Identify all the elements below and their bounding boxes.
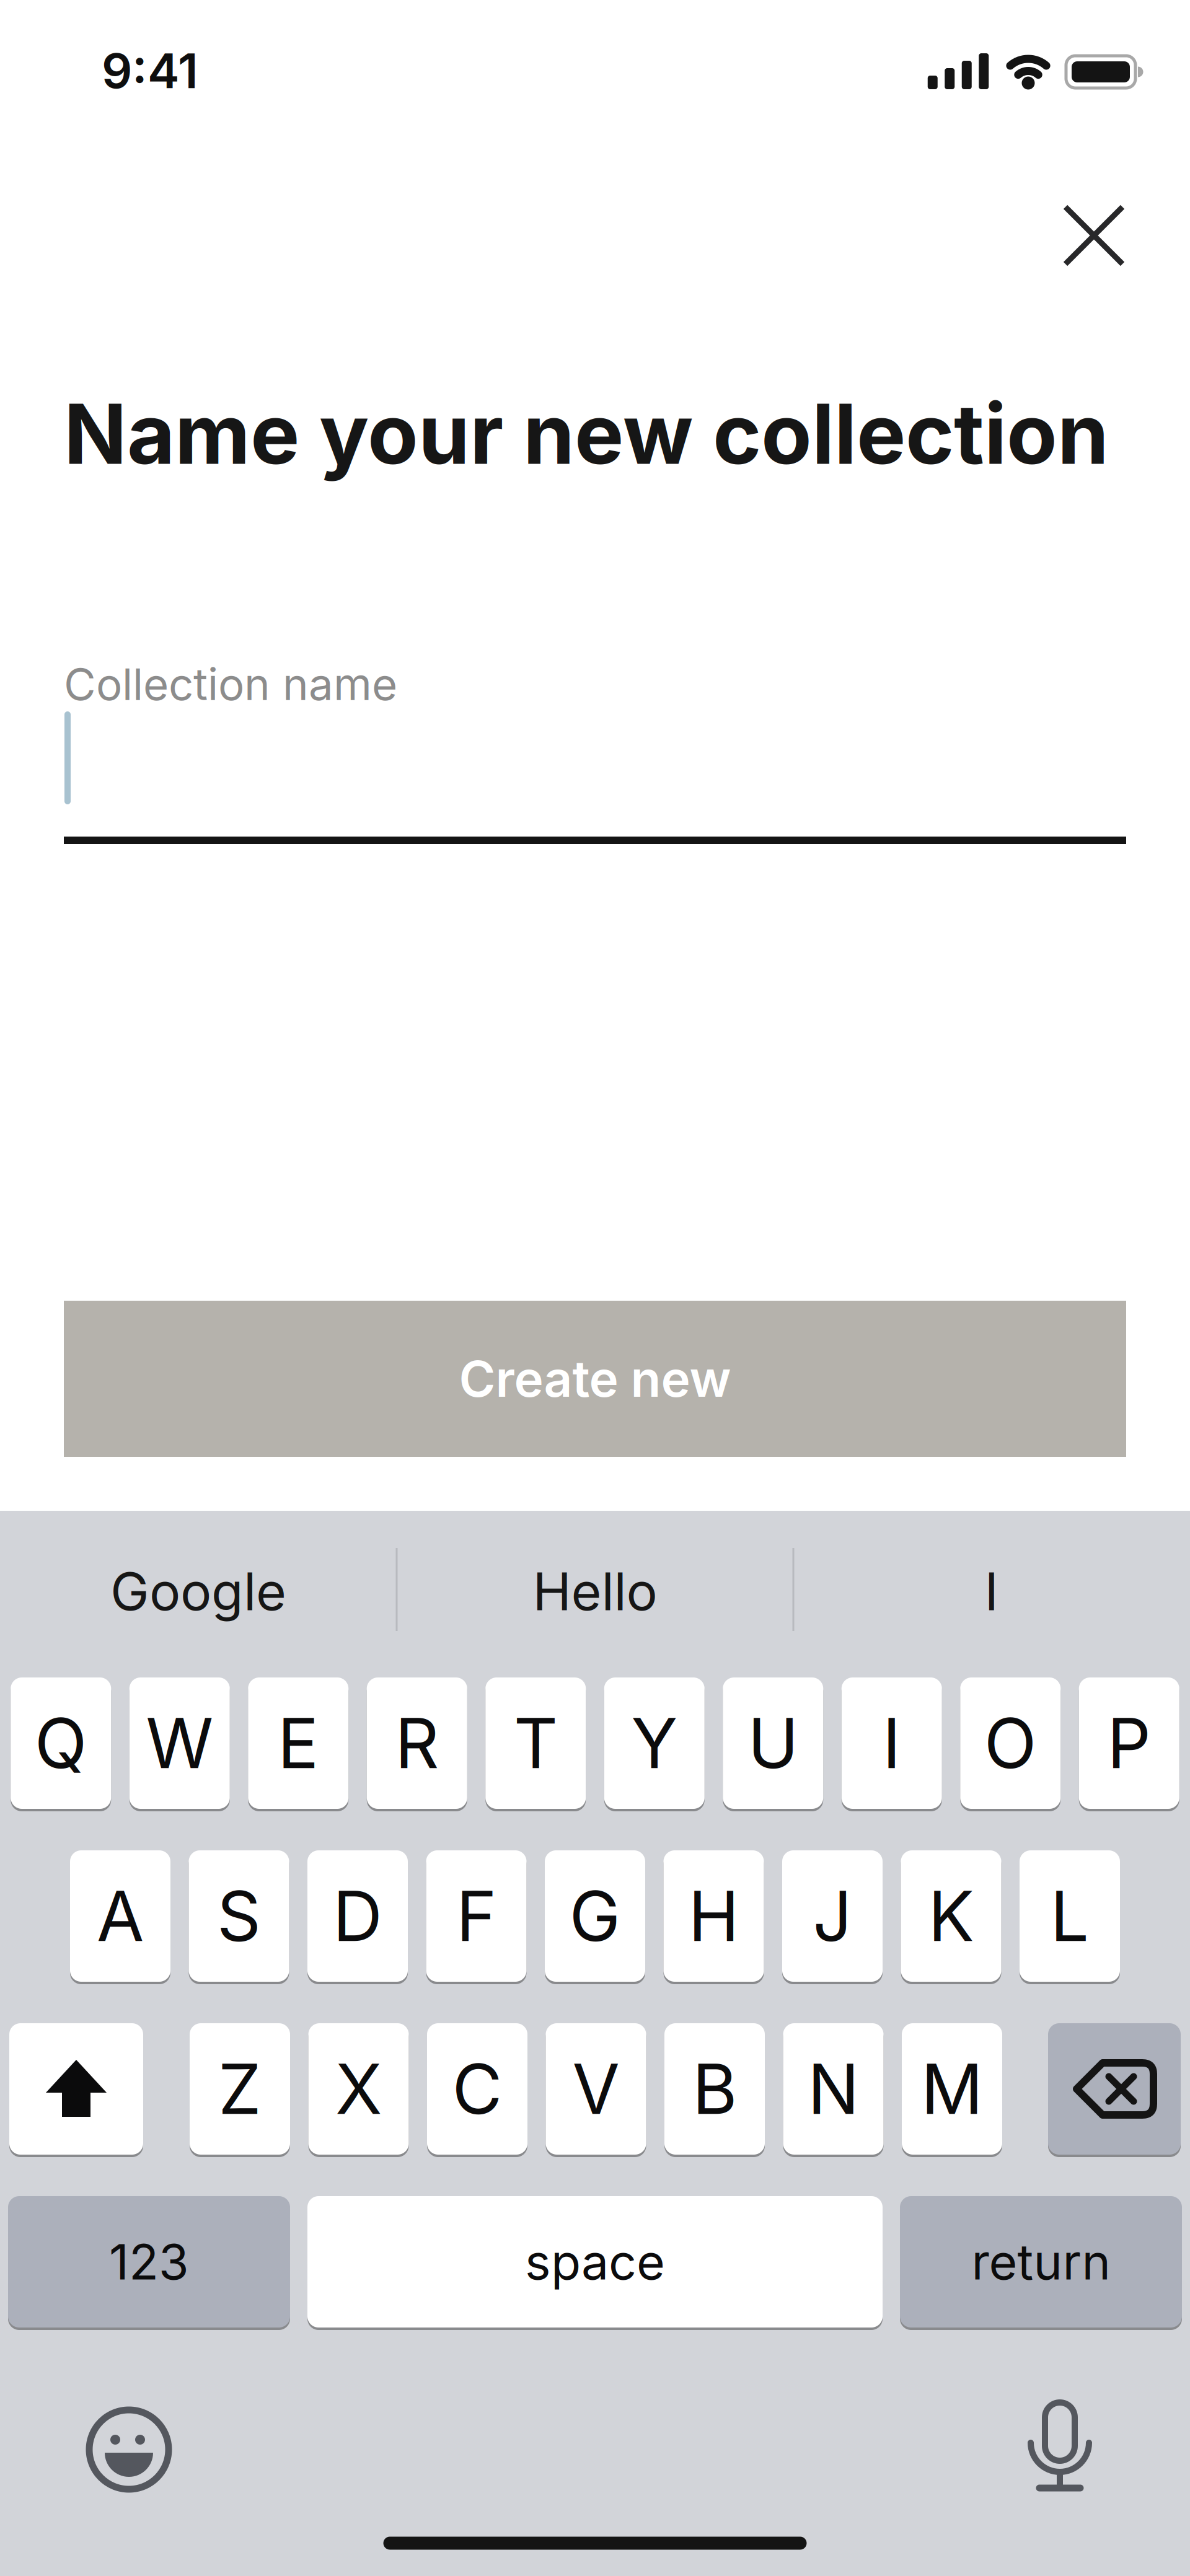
button[interactable]: A bbox=[70, 1850, 170, 1982]
button[interactable]: Create new bbox=[64, 1301, 1126, 1457]
staticText: D bbox=[333, 1876, 382, 1957]
button[interactable]: U bbox=[723, 1677, 823, 1809]
staticText: 123 bbox=[109, 2233, 189, 2291]
staticText: W bbox=[146, 1703, 213, 1784]
button[interactable]: S bbox=[189, 1850, 289, 1982]
button[interactable]: D bbox=[307, 1850, 408, 1982]
button[interactable]: Dictation bbox=[1023, 2401, 1097, 2494]
staticText: Y bbox=[631, 1703, 678, 1784]
staticText: 9:41 bbox=[102, 42, 198, 99]
staticText: Create new bbox=[459, 1350, 731, 1408]
staticText: N bbox=[808, 2048, 859, 2129]
button[interactable]: Delete bbox=[1048, 2023, 1181, 2155]
staticText: C bbox=[452, 2048, 502, 2129]
staticText: K bbox=[928, 1876, 974, 1957]
staticText: A bbox=[97, 1876, 144, 1957]
button[interactable]: Y bbox=[604, 1677, 705, 1809]
button[interactable]: W bbox=[129, 1677, 230, 1809]
button[interactable]: I bbox=[842, 1677, 942, 1809]
staticText: I bbox=[882, 1703, 901, 1784]
staticText: R bbox=[395, 1703, 439, 1784]
staticText: Google bbox=[110, 1561, 286, 1622]
button[interactable]: return bbox=[900, 2196, 1182, 2328]
button[interactable]: J bbox=[782, 1850, 883, 1982]
staticText: T bbox=[514, 1703, 558, 1784]
staticText: U bbox=[748, 1703, 798, 1784]
staticText: space bbox=[525, 2233, 665, 2291]
staticText: M bbox=[921, 2048, 983, 2129]
button[interactable]: K bbox=[901, 1850, 1001, 1982]
button[interactable]: X bbox=[308, 2023, 409, 2155]
button[interactable]: Shift bbox=[9, 2023, 143, 2155]
button[interactable]: Close bbox=[1064, 206, 1124, 265]
button[interactable]: G bbox=[545, 1850, 645, 1982]
staticText: P bbox=[1107, 1703, 1151, 1784]
button[interactable]: P bbox=[1079, 1677, 1179, 1809]
staticText: Q bbox=[35, 1703, 87, 1784]
button[interactable]: R bbox=[367, 1677, 467, 1809]
staticText: O bbox=[984, 1703, 1037, 1784]
button[interactable]: Hello bbox=[409, 1545, 781, 1638]
staticText: Collection name bbox=[64, 658, 397, 710]
staticText: H bbox=[688, 1876, 739, 1957]
staticText: I bbox=[985, 1561, 999, 1622]
staticText: B bbox=[692, 2048, 737, 2129]
staticText: J bbox=[813, 1876, 852, 1957]
button[interactable]: Q bbox=[11, 1677, 111, 1809]
staticText: G bbox=[569, 1876, 621, 1957]
button[interactable]: V bbox=[546, 2023, 646, 2155]
staticText: F bbox=[456, 1876, 496, 1957]
staticText: X bbox=[335, 2048, 382, 2129]
button[interactable]: I bbox=[806, 1545, 1178, 1638]
button[interactable]: N bbox=[783, 2023, 884, 2155]
staticText: L bbox=[1050, 1876, 1089, 1957]
button[interactable]: C bbox=[427, 2023, 527, 2155]
staticText: E bbox=[278, 1703, 319, 1784]
button[interactable]: M bbox=[902, 2023, 1002, 2155]
button[interactable]: L bbox=[1020, 1850, 1120, 1982]
button[interactable]: Emoji bbox=[82, 2403, 175, 2496]
button[interactable]: O bbox=[960, 1677, 1061, 1809]
button[interactable]: T bbox=[485, 1677, 586, 1809]
staticText: Hello bbox=[533, 1561, 657, 1622]
button[interactable]: Google bbox=[12, 1545, 384, 1638]
staticText: V bbox=[572, 2048, 619, 2129]
button[interactable]: B bbox=[664, 2023, 765, 2155]
button[interactable]: Z bbox=[190, 2023, 290, 2155]
button[interactable]: space bbox=[307, 2196, 883, 2328]
button[interactable]: H bbox=[663, 1850, 764, 1982]
staticText: Name your new collection bbox=[64, 385, 1109, 483]
staticText: S bbox=[217, 1876, 261, 1957]
staticText: return bbox=[972, 2233, 1110, 2291]
button[interactable]: 123 bbox=[8, 2196, 290, 2328]
button[interactable]: F bbox=[426, 1850, 527, 1982]
staticText: Z bbox=[218, 2048, 262, 2129]
button[interactable]: E bbox=[248, 1677, 348, 1809]
